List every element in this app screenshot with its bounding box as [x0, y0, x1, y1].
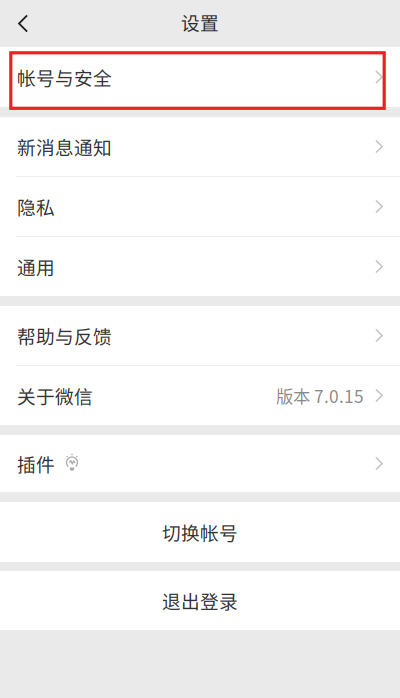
button[interactable]: Back: [0, 0, 48, 47]
staticText: 切换帐号: [162, 518, 238, 545]
staticText: 帐号与安全: [17, 63, 112, 90]
staticText: 版本 7.0.15: [276, 383, 364, 408]
staticText: 设置: [181, 8, 219, 35]
button[interactable]: 新消息通知: [0, 117, 400, 176]
button[interactable]: 帐号与安全: [0, 47, 400, 107]
staticText: 帮助与反馈: [17, 322, 112, 349]
button[interactable]: 隐私: [0, 177, 400, 236]
staticText: 隐私: [17, 193, 55, 220]
staticText: 插件: [17, 450, 55, 477]
staticText: 退出登录: [162, 587, 238, 614]
button[interactable]: 通用: [0, 237, 400, 296]
button[interactable]: 插件: [0, 435, 400, 492]
button[interactable]: 切换帐号: [0, 502, 400, 562]
button[interactable]: 帮助与反馈: [0, 306, 400, 365]
button[interactable]: 关于微信: [0, 366, 400, 425]
staticText: 通用: [17, 253, 55, 280]
button[interactable]: 退出登录: [0, 571, 400, 630]
staticText: 关于微信: [17, 382, 93, 409]
staticText: 新消息通知: [17, 133, 112, 160]
